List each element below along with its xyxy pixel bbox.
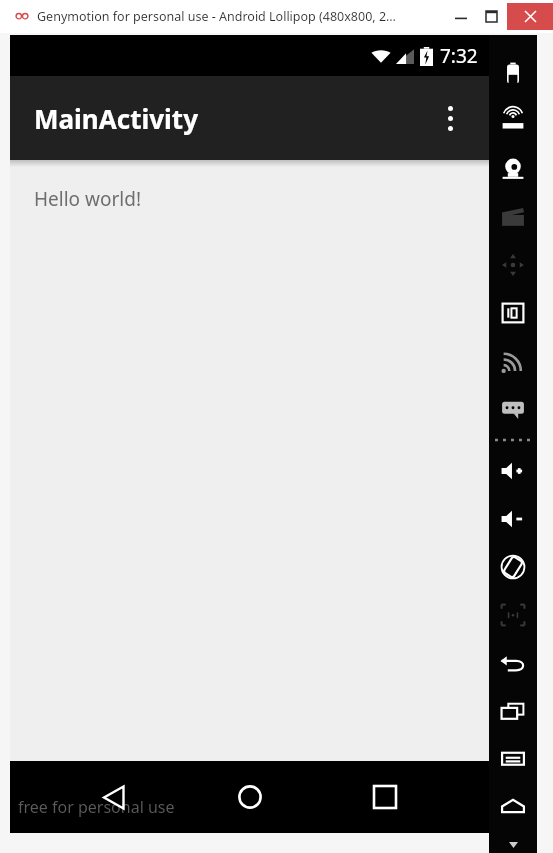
button[interactable]: Home [489, 783, 537, 831]
button[interactable]: Maximize [476, 0, 507, 33]
button[interactable]: Volume up [489, 447, 537, 495]
button[interactable]: Screen recorder [489, 193, 537, 241]
button[interactable]: Recent apps [353, 765, 417, 829]
button[interactable]: SMS [489, 385, 537, 433]
button[interactable]: Back [489, 639, 537, 687]
staticText: free for personal use [18, 796, 175, 818]
button[interactable]: Minimize [445, 0, 476, 33]
staticText: Hello world! [34, 186, 142, 212]
button[interactable]: Close [507, 3, 553, 30]
staticText: MainActivity [34, 101, 198, 136]
button[interactable]: Identifiers [489, 289, 537, 337]
button[interactable]: Volume down [489, 495, 537, 543]
staticText: Genymotion for personal use - Android Lo… [37, 8, 396, 25]
staticText: 7:32 [440, 43, 478, 69]
button[interactable]: Menu [489, 735, 537, 783]
button[interactable]: D-pad [489, 241, 537, 289]
button[interactable]: Home [218, 765, 282, 829]
button[interactable]: Baseband [489, 337, 537, 385]
button[interactable]: GPS [489, 97, 537, 145]
button[interactable]: Expand [489, 837, 537, 853]
button[interactable]: Camera [489, 145, 537, 193]
button[interactable]: Rotate [489, 543, 537, 591]
button[interactable]: Actual size [489, 591, 537, 639]
button[interactable]: Copy paste [489, 687, 537, 735]
button[interactable]: Battery [489, 49, 537, 97]
button[interactable]: More options [429, 97, 471, 139]
button[interactable]: Back [82, 765, 146, 829]
